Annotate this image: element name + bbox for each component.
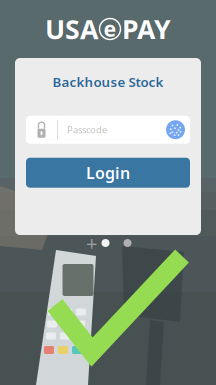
staticText: e xyxy=(103,14,116,43)
button[interactable]: Login xyxy=(26,158,190,188)
staticText: + xyxy=(86,230,97,256)
staticText: Backhouse Stock xyxy=(52,73,163,91)
staticText: Passcode xyxy=(67,123,107,136)
staticText: Login xyxy=(86,162,130,183)
button[interactable]: Touch ID xyxy=(161,116,190,144)
staticText: PAY xyxy=(122,11,171,47)
staticText: USA xyxy=(45,11,98,47)
